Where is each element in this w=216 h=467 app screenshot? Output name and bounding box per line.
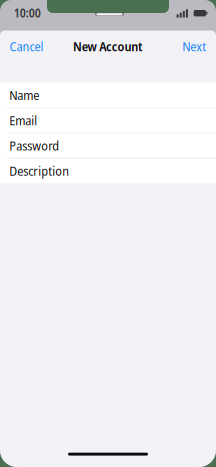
staticText: Name — [9, 87, 39, 104]
button[interactable]: Cancel — [9, 38, 69, 54]
button[interactable]: Password — [0, 133, 216, 158]
staticText: 10:00 — [14, 5, 41, 21]
staticText: Cancel — [9, 38, 43, 55]
staticText: Email — [9, 112, 37, 129]
button[interactable]: Description — [0, 158, 216, 183]
button[interactable]: Email — [0, 108, 216, 133]
button[interactable]: Next — [146, 38, 206, 54]
staticText: Password — [9, 137, 59, 154]
staticText: New Account — [73, 38, 143, 55]
staticText: Next — [182, 38, 206, 55]
button[interactable]: Name — [0, 83, 216, 108]
staticText: Description — [9, 162, 69, 179]
